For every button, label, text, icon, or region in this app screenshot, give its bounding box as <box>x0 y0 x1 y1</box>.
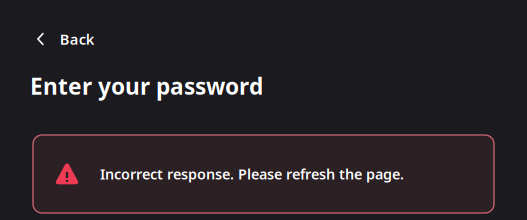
staticText: Incorrect response. Please refresh the p… <box>100 164 404 184</box>
button[interactable]: Back <box>0 27 140 51</box>
staticText: Back <box>60 29 95 49</box>
staticText: Enter your password <box>30 71 263 101</box>
